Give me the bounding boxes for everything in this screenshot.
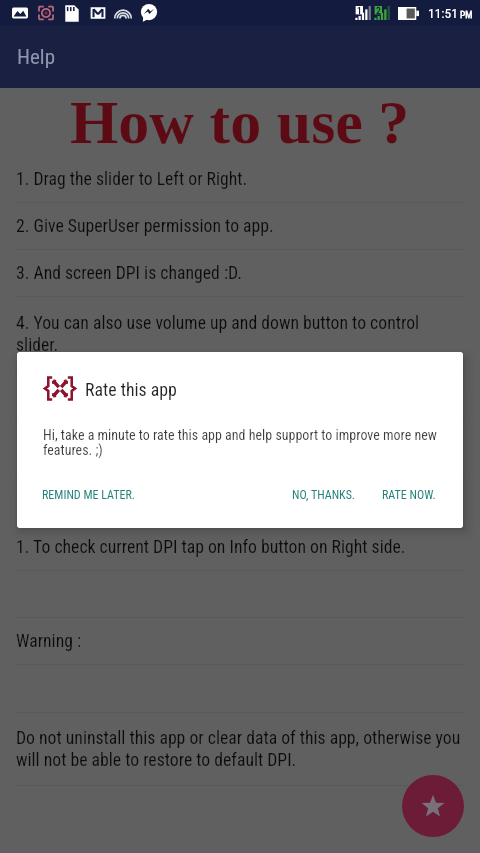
staticText: 3. And screen DPI is changed :D. [16,263,242,284]
button[interactable]: NO, THANKS. [285,480,363,510]
staticText: 2. Give SuperUser permission to app. [16,216,274,237]
button[interactable]: Help [0,26,480,88]
button[interactable]: REMIND ME LATER. [35,480,142,510]
staticText: 1. To check current DPI tap on Info butt… [16,537,406,558]
staticText: 11:51 [428,5,458,21]
staticText: 1 [357,5,362,16]
staticText: REMIND ME LATER. [42,488,135,502]
staticText: Do not uninstall this app or clear data … [16,728,464,770]
button[interactable]: Rate this app [402,775,464,837]
staticText: NO, THANKS. [292,488,356,502]
staticText: 2 [376,5,381,16]
staticText: Warning : [16,631,82,652]
staticText: PM [460,9,473,20]
staticText: 1. Drag the slider to Left or Right. [16,169,248,190]
staticText: RATE NOW. [382,488,436,502]
staticText: Rate this app [85,379,177,400]
staticText: 4. You can also use volume up and down b… [16,313,464,355]
staticText: How to use ? [70,88,410,156]
button[interactable]: RATE NOW. [375,480,443,510]
staticText: Help [17,45,56,70]
staticText: Hi, take a minute to rate this app and h… [43,427,451,459]
